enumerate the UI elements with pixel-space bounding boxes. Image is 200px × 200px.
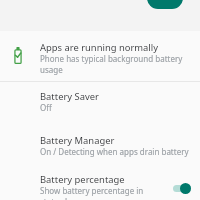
button[interactable]: Battery percentage [0, 173, 200, 200]
staticText: Phone has typical background battery [40, 53, 183, 64]
staticText: Battery Saver [40, 90, 99, 103]
button[interactable]: Toggle battery percentage [171, 181, 195, 195]
button[interactable]: Primary action [147, 0, 183, 9]
button[interactable]: Battery Manager [0, 134, 200, 162]
staticText: Show battery percentage in [40, 185, 144, 196]
staticText: Apps are running normally [40, 41, 158, 54]
staticText: Battery percentage [40, 173, 125, 186]
staticText: usage [40, 64, 63, 75]
button[interactable]: Battery Saver [0, 90, 200, 118]
staticText: Battery Manager [40, 134, 115, 147]
button[interactable]: Apps are running normally [0, 41, 200, 79]
staticText: Off [40, 102, 52, 113]
staticText: status bar [40, 196, 78, 200]
staticText: On / Detecting when apps drain battery [40, 146, 189, 157]
